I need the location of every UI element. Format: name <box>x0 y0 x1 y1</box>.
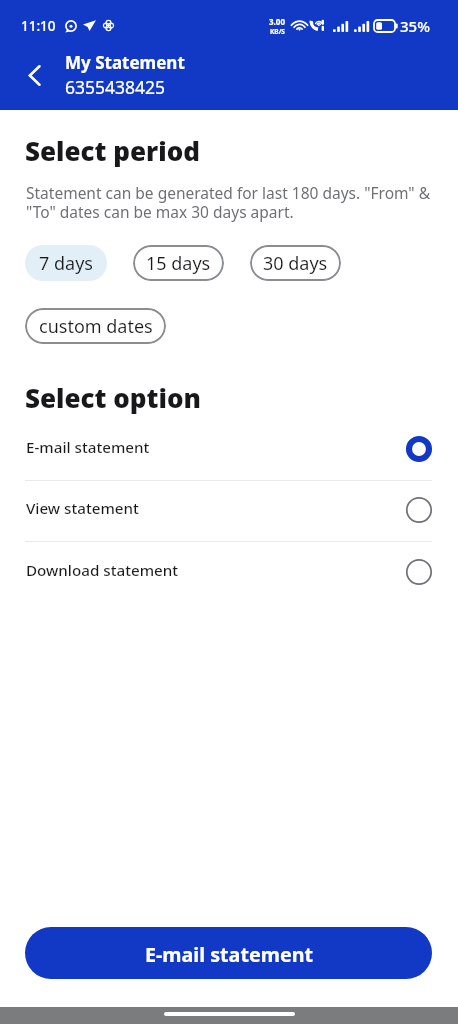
button[interactable]: Back <box>11 52 57 98</box>
staticText: 15 days <box>146 251 211 276</box>
button[interactable]: 15 days <box>133 245 224 281</box>
staticText: 6355438425 <box>65 75 166 99</box>
staticText: 35% <box>400 16 430 36</box>
staticText: E-mail statement <box>26 437 406 458</box>
button[interactable]: View statement <box>0 478 458 538</box>
staticText: Download statement <box>26 560 406 581</box>
staticText: Select option <box>25 380 201 415</box>
button[interactable]: custom dates <box>25 308 166 344</box>
staticText: KB/S <box>270 27 285 36</box>
button[interactable]: E-mail statement <box>25 927 432 979</box>
button[interactable]: 30 days <box>250 245 341 281</box>
button[interactable]: Download statement <box>0 540 458 600</box>
staticText: View statement <box>26 498 406 519</box>
staticText: My Statement <box>65 51 185 74</box>
button[interactable]: 7 days <box>25 245 107 281</box>
staticText: 7 days <box>39 251 93 276</box>
button[interactable]: E-mail statement <box>0 417 458 477</box>
staticText: custom dates <box>39 314 153 339</box>
staticText: 30 days <box>263 251 328 276</box>
staticText: E-mail statement <box>145 941 313 968</box>
staticText: Select period <box>25 133 200 168</box>
staticText: 11:10 <box>21 17 56 35</box>
staticText: 3.00 <box>269 16 285 27</box>
staticText: Statement can be generated for last 180 … <box>26 182 431 222</box>
